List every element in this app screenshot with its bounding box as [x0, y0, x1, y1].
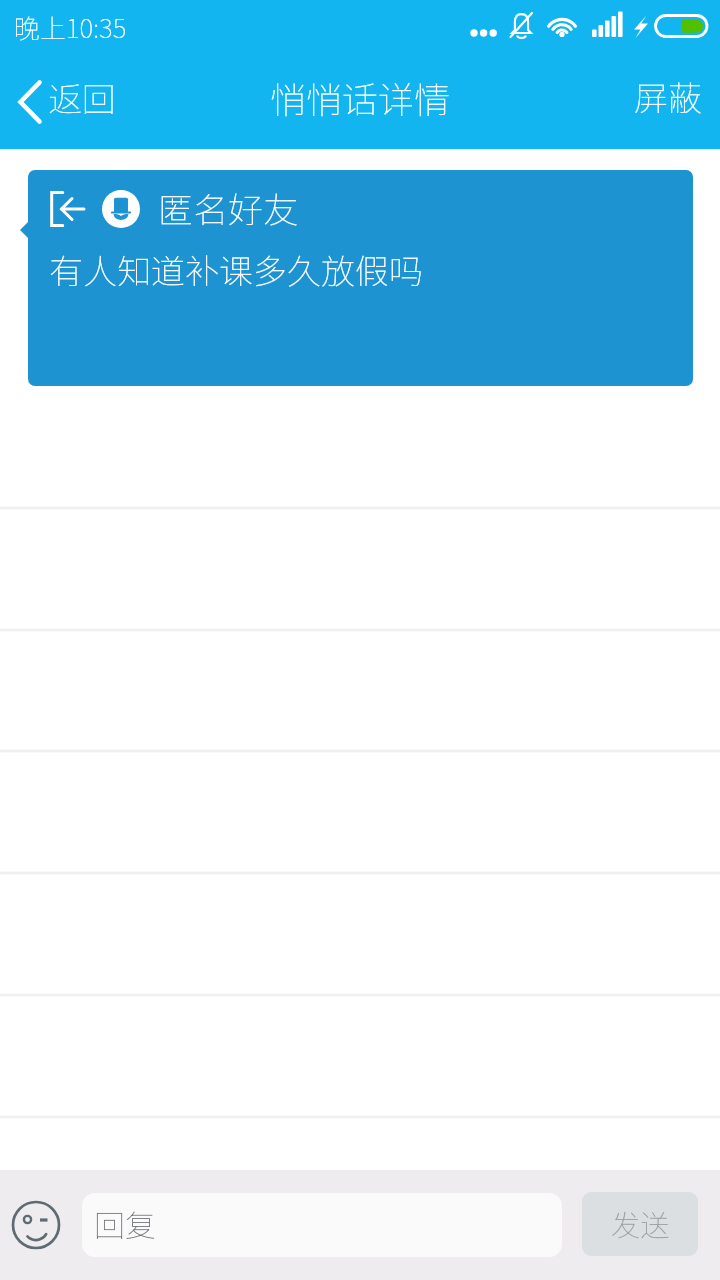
button[interactable]: 返回 [0, 67, 128, 137]
button[interactable]: 发送 [582, 1192, 698, 1256]
staticText: 晚上10:35 [14, 8, 127, 46]
button[interactable]: 屏蔽 [618, 68, 720, 137]
button[interactable]: 匿名好友 [28, 170, 693, 386]
staticText: 匿名好友 [158, 182, 299, 233]
button[interactable]: 回复 [82, 1193, 562, 1257]
button[interactable]: Emoji [0, 1189, 72, 1261]
staticText: 回复 [94, 1201, 156, 1246]
staticText: 发送 [611, 1202, 670, 1244]
staticText: 屏蔽 [634, 72, 702, 121]
staticText: 有人知道补课多久放假吗 [49, 245, 423, 294]
staticText: 悄悄话详情 [270, 71, 451, 123]
staticText: 返回 [48, 73, 116, 122]
